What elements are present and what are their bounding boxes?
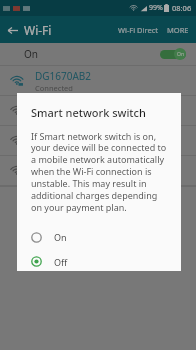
button[interactable]: Wi-Fi Direct: [113, 19, 163, 41]
button[interactable]: NSKRIT2-5G: [0, 96, 196, 125]
staticText: 99%: [149, 3, 163, 13]
staticText: On: [177, 51, 184, 58]
button[interactable]: Off: [17, 252, 181, 271]
staticText: Wi-Fi: [24, 22, 52, 38]
staticText: NSKRIT2-5G: [35, 104, 92, 118]
button[interactable]: On: [17, 226, 181, 248]
staticText: Smart network switch: [31, 105, 146, 120]
button[interactable]: On: [0, 43, 196, 65]
staticText: DG1670AB2: [35, 69, 92, 83]
staticText: Wi-Fi Direct: [118, 25, 158, 35]
staticText: MORE: [167, 25, 189, 35]
button[interactable]: PS3-5298927: [0, 126, 196, 155]
button[interactable]: DG1670AB2: [0, 66, 196, 95]
staticText: PS3-5298927: [35, 134, 96, 148]
staticText: On: [24, 47, 38, 61]
staticText: Off: [54, 256, 68, 268]
staticText: MPYT-5G: [35, 164, 78, 178]
button[interactable]: Back: [0, 18, 24, 42]
button[interactable]: MPYT-5G: [0, 156, 196, 185]
staticText: On: [54, 231, 67, 243]
button[interactable]: MORE: [163, 19, 196, 41]
staticText: If Smart network switch is on, your devi…: [31, 130, 167, 214]
staticText: Connected: [35, 83, 73, 93]
staticText: 08:06: [172, 3, 192, 13]
